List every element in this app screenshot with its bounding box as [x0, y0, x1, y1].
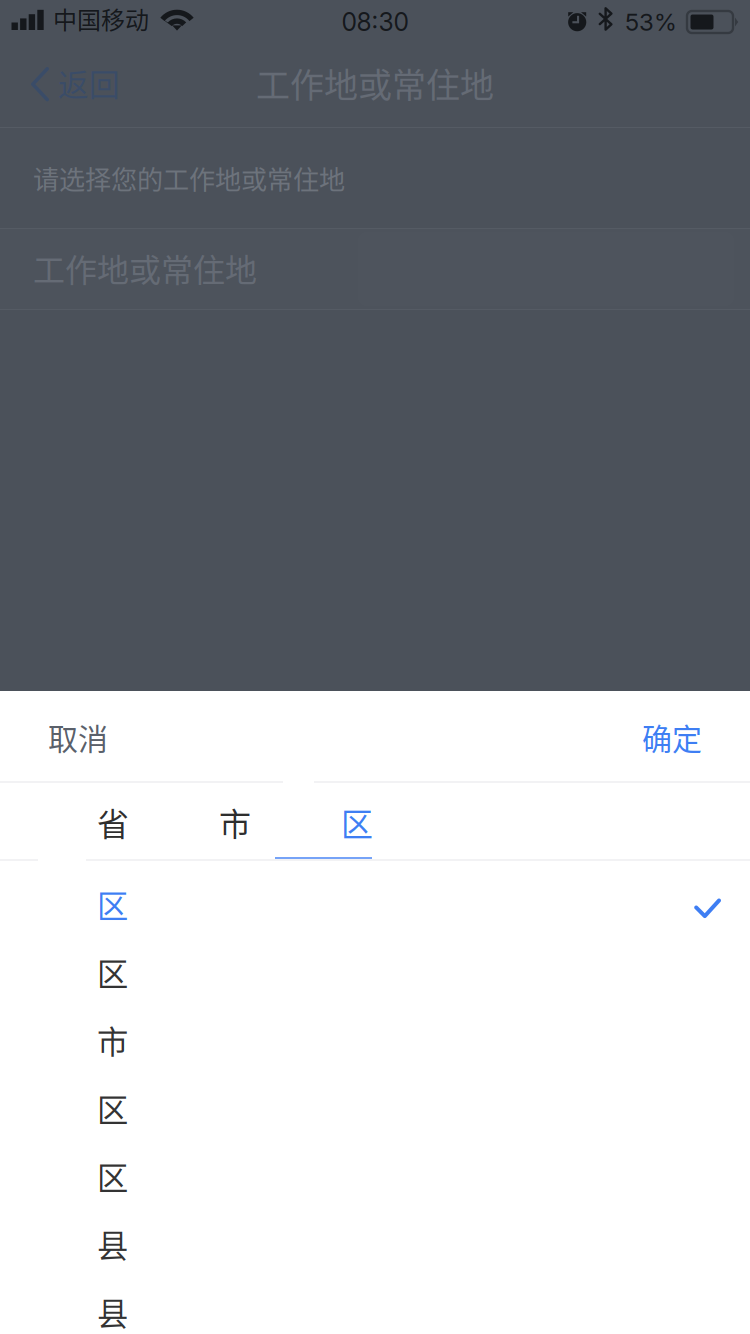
button[interactable]: 县: [0, 1278, 750, 1334]
staticText: 县: [97, 1289, 128, 1334]
button[interactable]: 取消: [0, 693, 138, 781]
staticText: 工作地或常住地: [256, 58, 494, 108]
button[interactable]: 区: [0, 1074, 750, 1142]
button[interactable]: 确定: [612, 693, 750, 781]
button[interactable]: 区: [0, 938, 750, 1006]
button[interactable]: 市: [0, 1006, 750, 1074]
staticText: 区: [97, 1153, 128, 1199]
staticText: 县: [97, 1221, 128, 1267]
button[interactable]: 返回: [0, 44, 134, 128]
staticText: 确定: [642, 715, 702, 759]
staticText: 区: [97, 881, 128, 927]
button[interactable]: 省: [52, 783, 174, 861]
staticText: 中国移动: [53, 1, 149, 36]
staticText: 53%: [625, 7, 677, 36]
staticText: 省: [97, 799, 129, 845]
staticText: 市: [219, 799, 251, 845]
staticText: 08:30: [341, 7, 408, 37]
staticText: 区: [97, 949, 128, 995]
button[interactable]: 市: [174, 783, 296, 861]
button[interactable]: 县: [0, 1210, 750, 1278]
staticText: 区: [341, 799, 373, 845]
button[interactable]: 工作地或常住地: [0, 228, 750, 310]
button[interactable]: 区: [0, 870, 750, 938]
staticText: 返回: [58, 61, 120, 105]
staticText: 取消: [48, 715, 108, 759]
button[interactable]: 区: [0, 1142, 750, 1210]
staticText: 工作地或常住地: [33, 245, 257, 291]
staticText: 请选择您的工作地或常住地: [33, 159, 345, 197]
staticText: 区: [97, 1085, 128, 1131]
button[interactable]: 区: [296, 783, 418, 861]
staticText: 市: [97, 1017, 128, 1063]
